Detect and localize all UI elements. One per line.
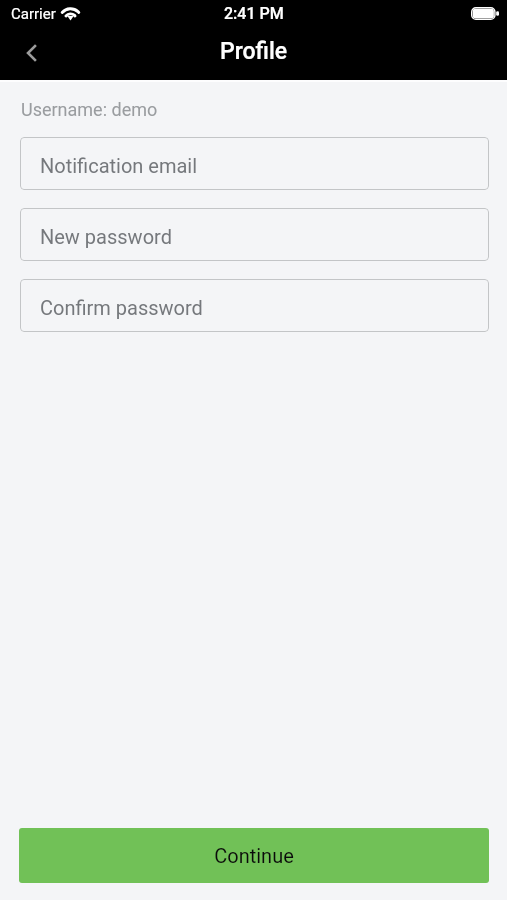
staticText: Notification email: [40, 154, 198, 177]
button[interactable]: Back: [0, 27, 54, 80]
staticText: New password: [40, 225, 172, 248]
staticText: Continue: [214, 844, 294, 867]
staticText: Profile: [220, 38, 288, 65]
staticText: 2:41 PM: [224, 4, 284, 23]
staticText: Carrier: [11, 5, 56, 23]
button[interactable]: Continue: [19, 828, 489, 883]
button[interactable]: New password: [20, 208, 489, 261]
button[interactable]: Notification email: [20, 137, 489, 190]
staticText: Confirm password: [40, 296, 203, 319]
button[interactable]: Confirm password: [20, 279, 489, 332]
staticText: Username: demo: [21, 99, 158, 120]
